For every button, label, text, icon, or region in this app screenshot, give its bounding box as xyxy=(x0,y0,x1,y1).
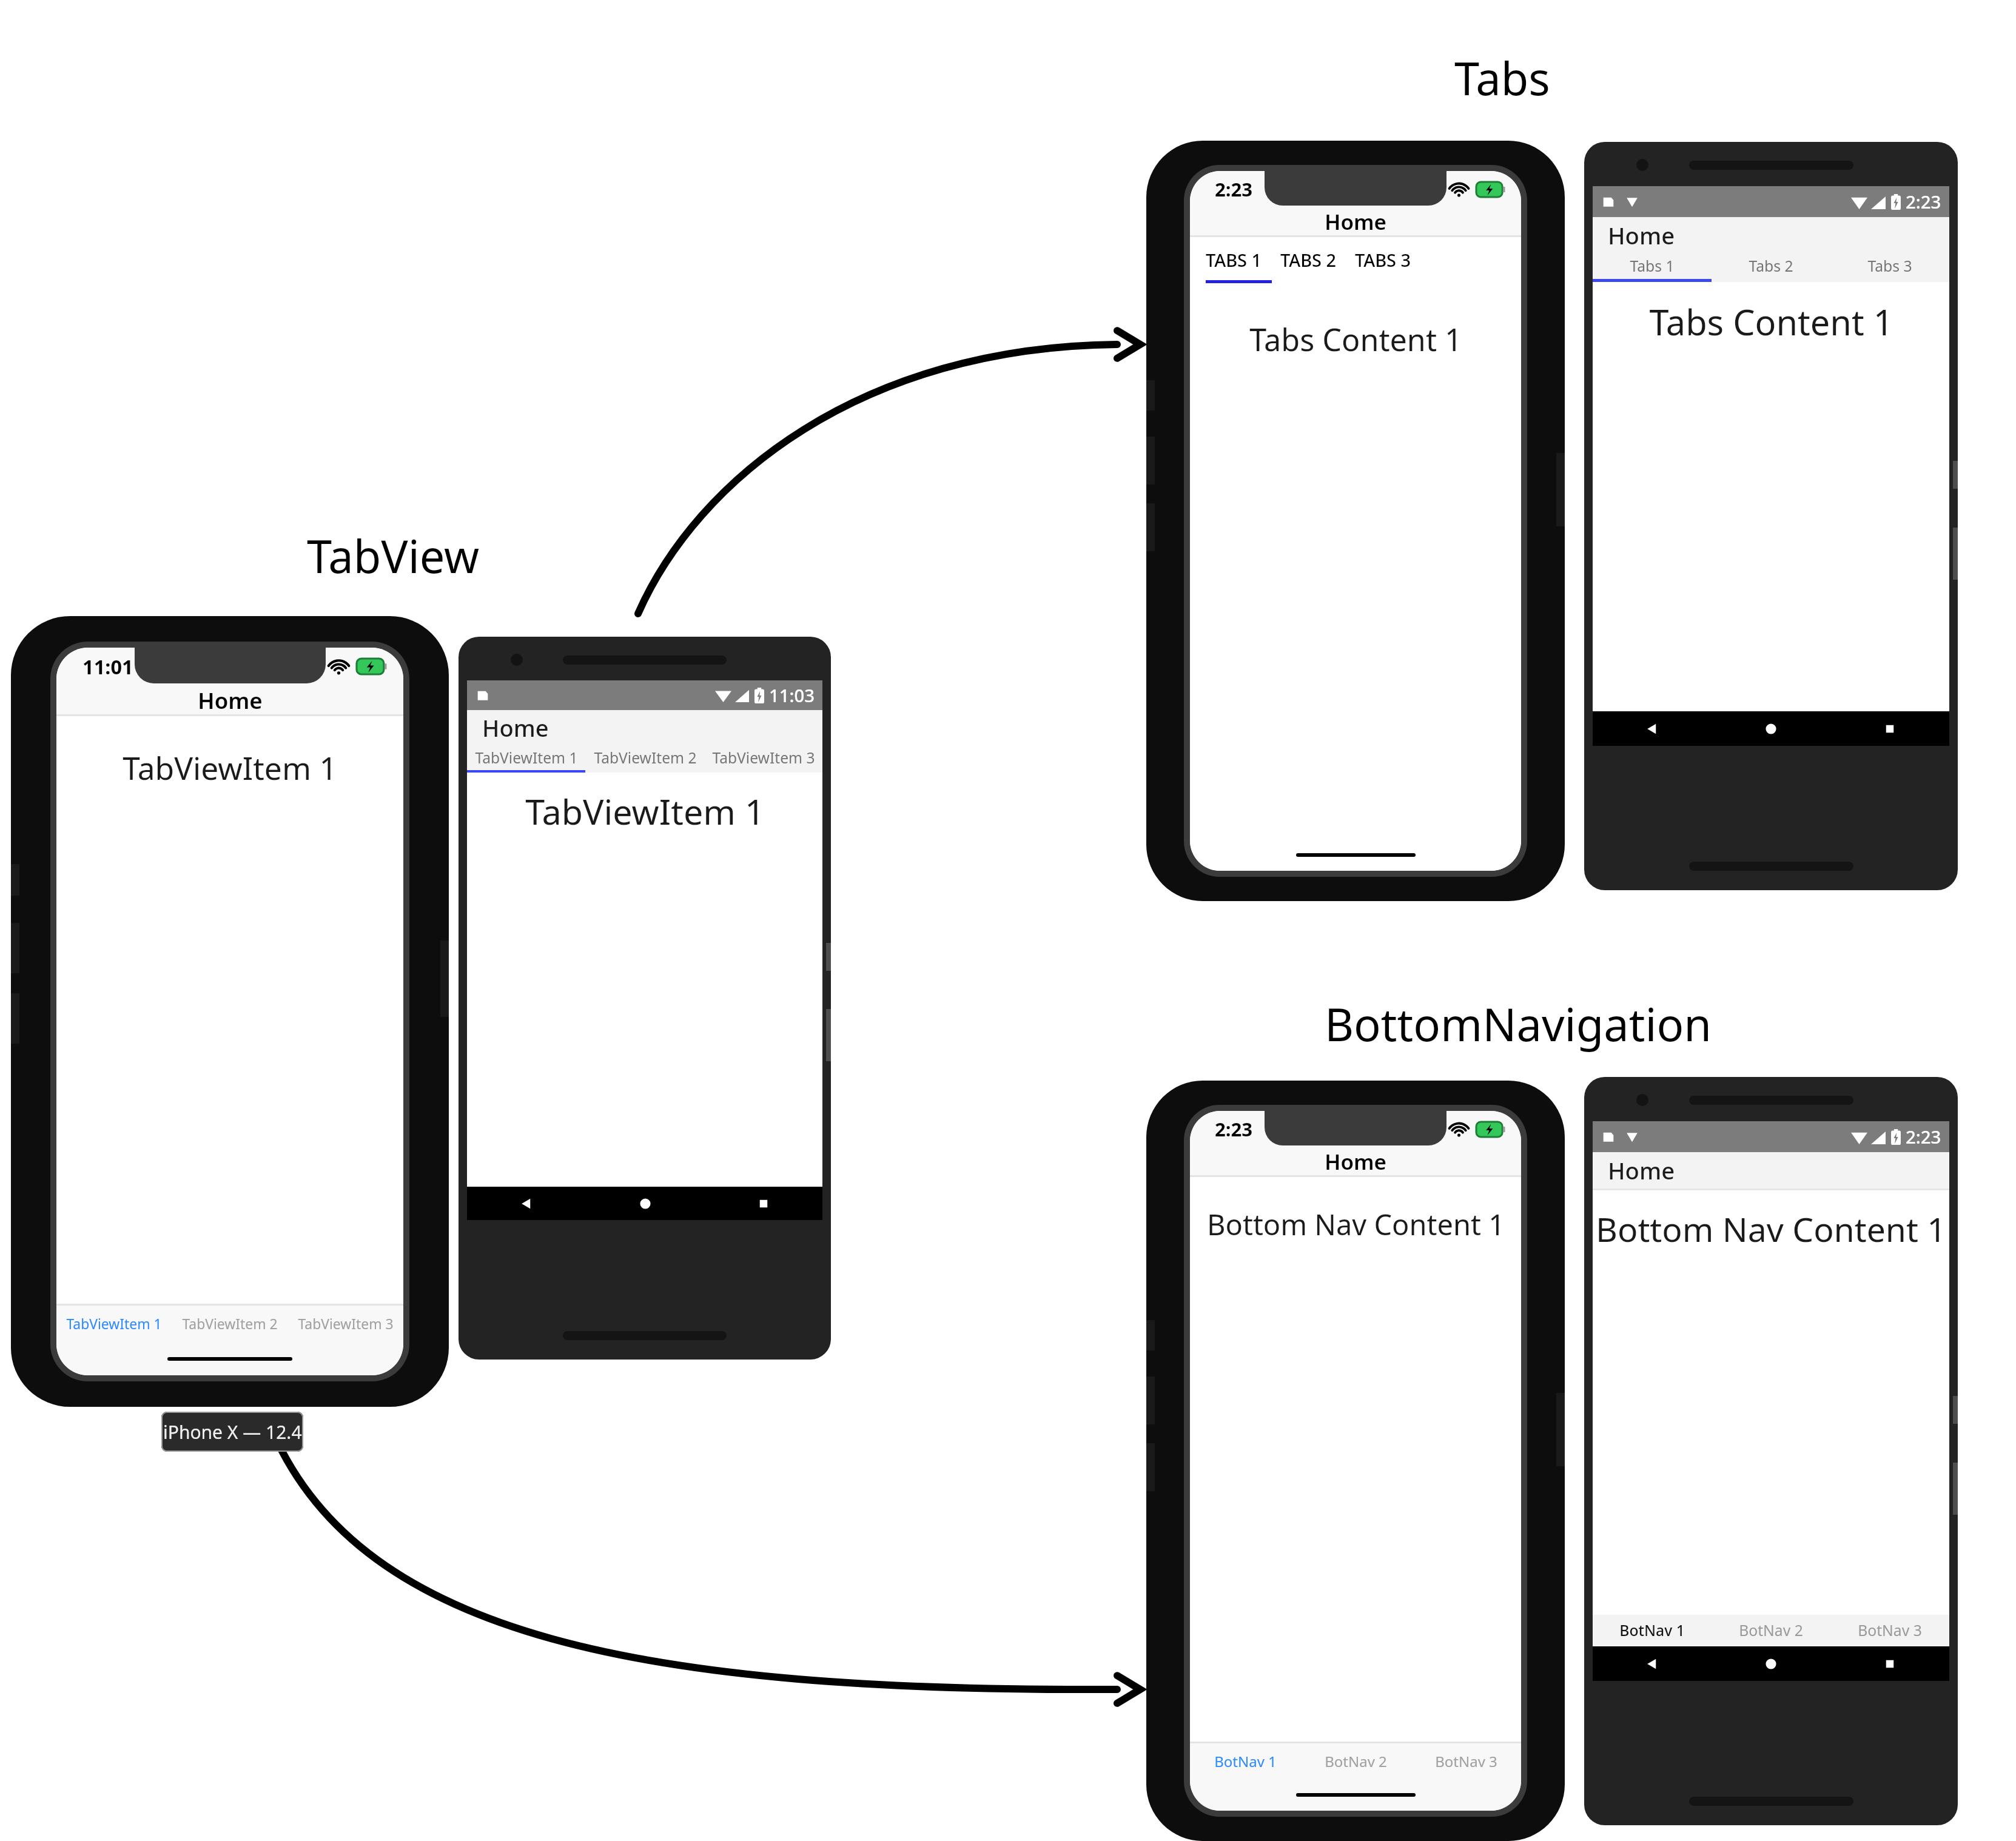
button[interactable]: Tabs 3 xyxy=(1830,253,1949,279)
button[interactable]: TABS 2 xyxy=(1280,248,1337,272)
button[interactable]: BotNav 3 xyxy=(1411,1743,1521,1779)
button[interactable]: Home xyxy=(1712,711,1830,746)
button[interactable]: BotNav 1 xyxy=(1593,1615,1712,1646)
button[interactable]: TabViewItem 3 xyxy=(287,1306,403,1342)
button[interactable]: Back xyxy=(1593,1646,1712,1681)
staticText: Home xyxy=(482,712,549,743)
staticText: Tabs 1 xyxy=(1630,256,1675,277)
staticText: 2:23 xyxy=(1906,190,1941,214)
button[interactable]: BotNav 2 xyxy=(1300,1743,1411,1779)
staticText: Home xyxy=(1325,207,1386,235)
staticText: TabViewItem 2 xyxy=(594,748,697,768)
button[interactable]: TabViewItem 1 xyxy=(56,1306,172,1342)
staticText: 2:23 xyxy=(1215,176,1253,202)
staticText: Tabs Content 1 xyxy=(1249,318,1462,360)
staticText: TabViewItem 1 xyxy=(525,788,765,835)
staticText: BottomNavigation xyxy=(1325,993,1712,1055)
button[interactable]: TabViewItem 1 xyxy=(467,745,586,770)
button[interactable]: TabViewItem 3 xyxy=(704,745,822,770)
staticText: TabView xyxy=(307,525,480,586)
staticText: Tabs xyxy=(1454,47,1550,109)
button[interactable]: Recent apps xyxy=(1830,711,1949,746)
button[interactable]: Recent apps xyxy=(1830,1646,1949,1681)
button[interactable]: Home xyxy=(1712,1646,1830,1681)
staticText: iPhone X — 12.4 xyxy=(163,1420,302,1444)
staticText: Tabs 3 xyxy=(1867,256,1912,277)
staticText: BotNav 1 xyxy=(1619,1620,1685,1641)
staticText: Home xyxy=(1325,1147,1386,1175)
staticText: TABS 2 xyxy=(1280,248,1337,272)
staticText: BotNav 2 xyxy=(1325,1751,1387,1771)
button[interactable]: TABS 1 xyxy=(1206,248,1262,272)
button[interactable]: Recent apps xyxy=(704,1187,822,1220)
staticText: Tabs Content 1 xyxy=(1649,298,1893,345)
staticText: TABS 3 xyxy=(1355,248,1411,272)
staticText: Home xyxy=(1608,220,1675,251)
staticText: Home xyxy=(198,685,263,714)
staticText: Tabs 2 xyxy=(1749,256,1793,277)
button[interactable]: Tabs 2 xyxy=(1712,253,1830,279)
staticText: Bottom Nav Content 1 xyxy=(1596,1206,1946,1252)
staticText: 11:01 xyxy=(82,653,133,680)
staticText: Bottom Nav Content 1 xyxy=(1207,1205,1505,1244)
staticText: TabViewItem 3 xyxy=(298,1315,394,1333)
button[interactable]: BotNav 3 xyxy=(1830,1615,1949,1646)
staticText: TabViewItem 1 xyxy=(475,748,578,768)
staticText: 2:23 xyxy=(1215,1116,1253,1142)
button[interactable]: TabViewItem 2 xyxy=(172,1306,287,1342)
staticText: 11:03 xyxy=(769,683,815,708)
staticText: BotNav 2 xyxy=(1739,1620,1803,1641)
staticText: BotNav 1 xyxy=(1214,1751,1277,1771)
button[interactable]: Tabs 1 xyxy=(1593,253,1712,279)
button[interactable]: TabViewItem 2 xyxy=(586,745,704,770)
staticText: BotNav 3 xyxy=(1435,1751,1497,1771)
staticText: BotNav 3 xyxy=(1858,1620,1922,1641)
staticText: TabViewItem 1 xyxy=(66,1315,162,1333)
staticText: TabViewItem 2 xyxy=(182,1315,278,1333)
button[interactable]: Home xyxy=(586,1187,704,1220)
button[interactable]: iPhone X — 12.4 xyxy=(161,1412,303,1452)
button[interactable]: BotNav 1 xyxy=(1190,1743,1300,1779)
staticText: 2:23 xyxy=(1906,1125,1941,1149)
staticText: TABS 1 xyxy=(1206,248,1262,272)
staticText: Home xyxy=(1608,1155,1675,1186)
staticText: TabViewItem 3 xyxy=(712,748,815,768)
staticText: TabViewItem 1 xyxy=(123,746,337,789)
button[interactable]: Back xyxy=(1593,711,1712,746)
button[interactable]: Back xyxy=(467,1187,586,1220)
button[interactable]: BotNav 2 xyxy=(1712,1615,1830,1646)
button[interactable]: TABS 3 xyxy=(1355,248,1411,272)
